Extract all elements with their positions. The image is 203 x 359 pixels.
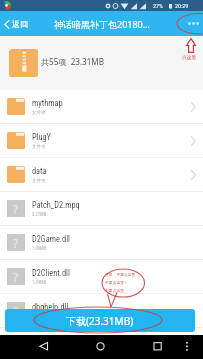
staticText: ? — [13, 269, 19, 285]
staticText: dbghelp.dll — [32, 302, 69, 312]
button[interactable]: ? — [0, 226, 203, 260]
staticText: ? — [13, 303, 19, 319]
staticText: ? — [13, 235, 19, 251]
button[interactable]: ? — [0, 260, 203, 294]
staticText: 神话暗黑补丁包20180… — [54, 18, 150, 30]
staticText: 共55项 23.31MB — [41, 56, 104, 67]
staticText: 0.28MB — [32, 314, 46, 319]
button[interactable]: ? — [0, 192, 203, 226]
button[interactable]: ? — [0, 294, 203, 328]
staticText: PlugY — [32, 132, 51, 142]
button[interactable]: 下载(23.31MB) — [5, 309, 195, 332]
staticText: 点这里 — [182, 54, 197, 60]
staticText: 1.09MB — [32, 246, 46, 251]
staticText: 27% — [153, 2, 163, 9]
button[interactable]: 返回 — [4, 19, 28, 29]
staticText: D2Game.dll — [32, 234, 70, 244]
button[interactable]: PlugY — [0, 124, 203, 158]
staticText: 返回 — [12, 19, 28, 29]
staticText: 1.04MB — [32, 280, 46, 285]
staticText: D2Client.dll — [32, 268, 70, 278]
staticText: 下载(23.31MB) — [66, 314, 134, 328]
staticText: 文件夹 — [32, 110, 46, 116]
staticText: 20:29 — [175, 2, 189, 9]
staticText: 注意，不要点这里 不要点这里！ 不要点这里 — [105, 272, 141, 293]
staticText: 3.21MB — [32, 212, 46, 217]
button[interactable]: More options — [183, 11, 203, 36]
staticText: 文件夹 — [32, 178, 46, 184]
button[interactable]: data — [0, 158, 203, 192]
staticText: ? — [13, 201, 19, 217]
staticText: Patch_D2.mpq — [32, 200, 80, 210]
button[interactable]: mythmap — [0, 90, 203, 124]
staticText: 文件夹 — [32, 144, 46, 150]
staticText: mythmap — [32, 98, 63, 108]
staticText: data — [32, 166, 47, 176]
